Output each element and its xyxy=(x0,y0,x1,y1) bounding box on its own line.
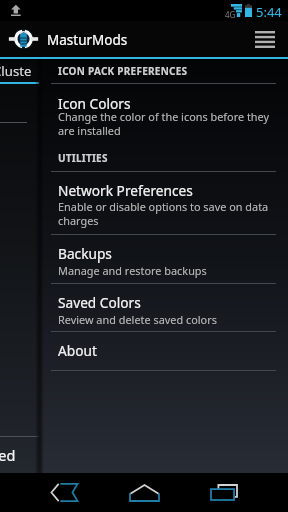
staticText: Network Preferences xyxy=(58,181,193,200)
staticText: Change the color of the icons before the… xyxy=(58,109,273,138)
staticText: 4G xyxy=(225,9,236,20)
staticText: ICON PACK PREFERENCES xyxy=(58,64,188,78)
staticText: ted xyxy=(0,445,16,465)
staticText: Saved Colors xyxy=(58,293,141,312)
staticText: 5:44 xyxy=(256,3,282,21)
staticText: UTILITIES xyxy=(58,151,108,165)
staticText: MasturMods xyxy=(47,31,128,49)
staticText: Manage and restore backups xyxy=(58,263,273,278)
staticText: Backups xyxy=(58,244,112,263)
staticText: About xyxy=(58,341,97,360)
button[interactable]: Back xyxy=(24,473,104,512)
button[interactable]: Menu xyxy=(246,21,288,57)
staticText: Enable or disable options to save on dat… xyxy=(58,199,273,228)
staticText: Review and delete saved colors xyxy=(58,312,273,327)
button[interactable]: Recent apps xyxy=(184,473,264,512)
button[interactable]: Home xyxy=(104,473,184,512)
staticText: Icon Colors xyxy=(58,94,131,113)
staticText: Cluster xyxy=(0,62,32,80)
